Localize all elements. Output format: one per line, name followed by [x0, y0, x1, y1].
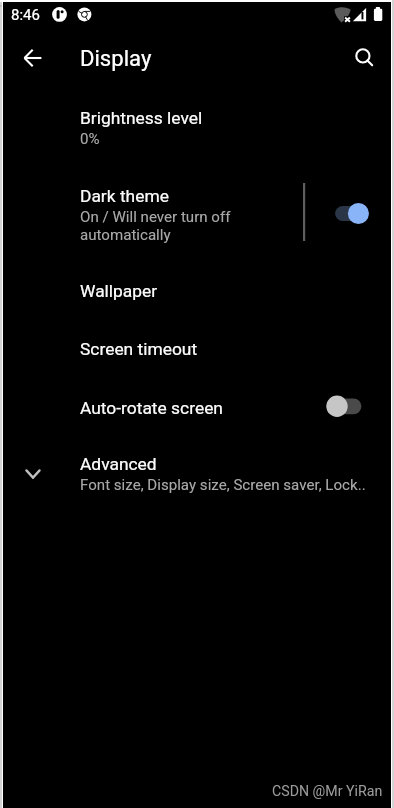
button[interactable]: Back — [12, 37, 54, 79]
staticText: Dark theme — [80, 186, 169, 206]
staticText: Auto-rotate screen — [80, 398, 223, 418]
button[interactable]: Search — [345, 38, 387, 80]
button[interactable]: Brightness level — [0, 108, 394, 154]
staticText: Font size, Display size, Screen saver, L… — [80, 476, 366, 494]
staticText: Screen timeout — [80, 339, 198, 359]
staticText: Wallpaper — [80, 281, 158, 301]
button[interactable]: Wallpaper — [0, 281, 394, 319]
button[interactable]: Dark theme switch, on — [296, 183, 392, 243]
button[interactable]: Screen timeout — [0, 339, 394, 377]
button[interactable]: Auto-rotate screen — [0, 398, 394, 436]
button[interactable]: Auto-rotate screen switch, off — [320, 390, 372, 424]
button[interactable]: Advanced — [0, 454, 394, 504]
staticText: On / Will never turn off automatically — [80, 208, 231, 244]
button[interactable]: Dark theme — [0, 186, 394, 248]
staticText: Advanced — [80, 454, 157, 474]
staticText: Brightness level — [80, 108, 203, 128]
staticText: CSDN @Mr YiRan — [272, 783, 383, 800]
staticText: 0% — [80, 130, 100, 148]
staticText: Display — [80, 45, 152, 71]
staticText: 8:46 — [11, 6, 40, 24]
button[interactable]: Expand advanced settings — [17, 458, 49, 490]
